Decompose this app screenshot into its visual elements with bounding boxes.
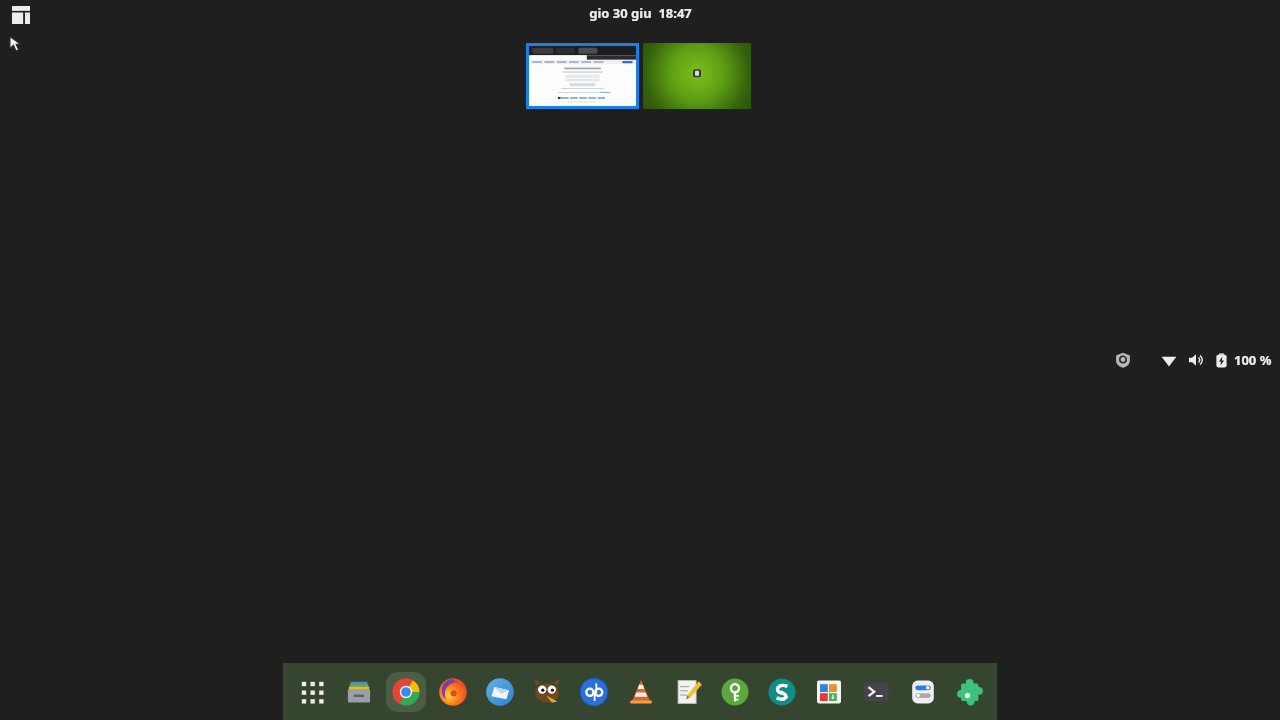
button[interactable]: gio 30 giu 18:47 bbox=[589, 4, 692, 22]
button[interactable]: Thunderbird bbox=[476, 663, 523, 720]
button[interactable]: Terminal bbox=[852, 663, 899, 720]
staticText: gio 30 giu 18:47 bbox=[589, 4, 692, 22]
button[interactable]: GIMP bbox=[523, 663, 570, 720]
button[interactable]: Shotwell bbox=[758, 663, 805, 720]
button[interactable]: Google Chrome bbox=[382, 663, 429, 720]
button[interactable]: Desktop window bbox=[643, 43, 751, 109]
button[interactable]: Files bbox=[335, 663, 382, 720]
button[interactable]: Chrome window bbox=[529, 46, 636, 106]
button[interactable]: Extensions bbox=[946, 663, 993, 720]
staticText: 100 % bbox=[1234, 351, 1272, 369]
button[interactable]: VLC media player bbox=[617, 663, 664, 720]
button[interactable]: Settings bbox=[899, 663, 946, 720]
button[interactable]: qBittorrent bbox=[570, 663, 617, 720]
button[interactable]: Activities overview bbox=[11, 5, 31, 25]
button[interactable]: System status menu bbox=[1115, 351, 1272, 369]
button[interactable]: Software center bbox=[805, 663, 852, 720]
button[interactable]: Text editor bbox=[664, 663, 711, 720]
button[interactable]: Show applications bbox=[288, 663, 335, 720]
button[interactable]: Firefox bbox=[429, 663, 476, 720]
button[interactable]: Password manager bbox=[711, 663, 758, 720]
